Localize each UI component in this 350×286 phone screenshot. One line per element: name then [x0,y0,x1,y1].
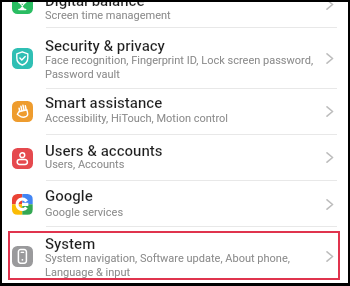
staticText: Users & accounts [45,142,163,160]
button[interactable]: Smart assistance [2,88,348,134]
staticText: Smart assistance [45,94,163,112]
staticText: Digital balance [45,0,145,10]
button[interactable]: System [2,226,348,284]
staticText: Security & privacy [45,37,165,55]
staticText: Screen time management [45,9,171,22]
staticText: System navigation, Software update, Abou… [45,252,290,265]
staticText: Language & input [45,266,131,279]
staticText: Accessibility, HiTouch, Motion control [45,112,228,125]
button[interactable]: Digital balance [2,2,348,27]
staticText: Google services [45,206,124,219]
staticText: Users, Accounts [45,158,125,171]
button[interactable]: Users & accounts [2,134,348,180]
button[interactable]: Google [2,180,348,226]
staticText: Google [45,187,93,205]
staticText: Face recognition, Fingerprint ID, Lock s… [45,54,314,67]
button[interactable]: Security & privacy [2,27,348,88]
staticText: System [45,235,96,253]
staticText: Password vault [45,68,120,81]
